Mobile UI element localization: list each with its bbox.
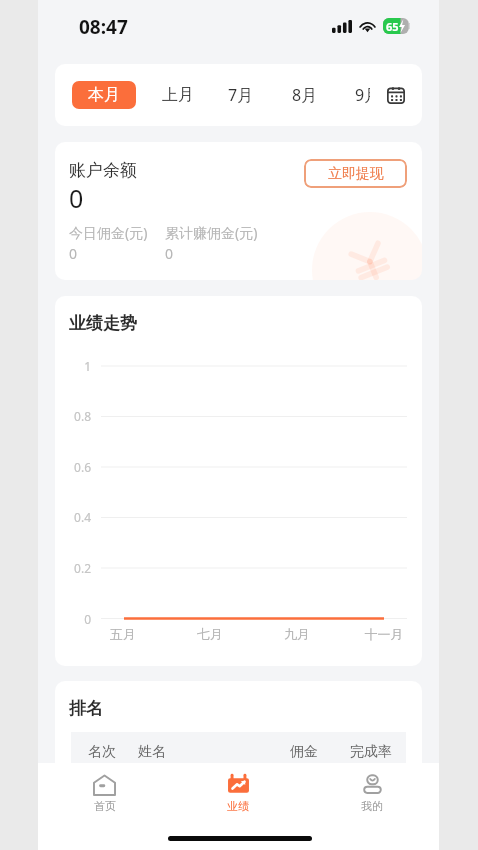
staticText: 名次 (88, 743, 116, 761)
staticText: 7月 (228, 84, 254, 106)
staticText: 完成率 (350, 743, 392, 761)
staticText: 上月 (162, 85, 194, 105)
staticText: 0 (69, 244, 78, 263)
button[interactable]: 首页 (38, 763, 171, 815)
staticText: 0.2 (55, 560, 91, 576)
staticText: 七月 (180, 626, 240, 642)
button[interactable]: 9月 (355, 84, 370, 106)
staticText: 本月 (88, 85, 120, 105)
staticText: 业绩走势 (69, 313, 137, 334)
staticText: 65 (386, 19, 399, 34)
button[interactable]: 我的 (305, 763, 439, 815)
staticText: 我的 (361, 799, 383, 813)
button[interactable]: Calendar (387, 86, 405, 104)
staticText: 十一月 (354, 626, 414, 642)
staticText: 姓名 (138, 743, 166, 761)
staticText: 五月 (93, 626, 153, 642)
button[interactable]: 上月 (162, 85, 194, 105)
staticText: 0 (165, 244, 174, 263)
staticText: 0.6 (55, 459, 91, 475)
staticText: 0.4 (55, 509, 91, 525)
button[interactable]: 立即提现 (304, 159, 407, 188)
staticText: 立即提现 (328, 165, 384, 183)
staticText: 排名 (69, 698, 103, 719)
staticText: 佣金 (290, 743, 318, 761)
button[interactable]: 8月 (292, 84, 318, 106)
staticText: 账户余额 (69, 160, 137, 181)
staticText: 0 (55, 611, 91, 627)
button[interactable]: 7月 (228, 84, 254, 106)
staticText: 1 (55, 358, 91, 374)
staticText: 业绩 (227, 799, 249, 813)
staticText: 8月 (292, 84, 318, 106)
staticText: 首页 (94, 799, 116, 813)
staticText: 累计赚佣金(元) (165, 223, 258, 242)
staticText: 今日佣金(元) (69, 223, 148, 242)
staticText: 9月 (355, 84, 370, 106)
staticText: 0.8 (55, 408, 91, 424)
staticText: 九月 (267, 626, 327, 642)
button[interactable]: 业绩 (171, 763, 305, 815)
staticText: 0 (69, 181, 84, 215)
staticText: 08:47 (79, 14, 128, 40)
button[interactable]: 本月 (72, 81, 136, 109)
